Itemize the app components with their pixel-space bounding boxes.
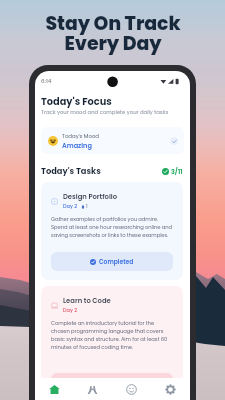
staticText: Today's Mood [62,132,99,140]
button[interactable]: Settings [151,378,190,400]
button[interactable]: Home [35,378,73,400]
staticText: Day 2 [63,307,78,314]
staticText: Gather examples of portfolios you admire… [51,215,174,239]
staticText: Complete an introductory tutorial for th… [51,319,174,351]
button[interactable]: Mood [112,378,151,400]
staticText: Day 2 [63,203,78,210]
staticText: 3/11 [171,167,183,176]
button[interactable]: Today's Mood [41,127,184,154]
staticText: Today's Tasks [41,165,101,177]
staticText: Amazing [62,141,92,150]
staticText: Completed [99,379,134,387]
staticText: 6:14 [41,77,52,85]
button[interactable]: Completed [51,373,173,392]
staticText: Stay On Track Every Day [45,10,181,56]
button[interactable]: Completed [51,252,173,271]
staticText: Today's Focus [41,95,112,109]
staticText: Learn to Code [63,296,111,306]
staticText: Completed [99,258,134,266]
button[interactable]: Statistics [73,378,112,400]
staticText: 1 [86,203,88,210]
button[interactable]: Mood logged [170,137,178,145]
staticText: Design Portfolio [63,192,118,202]
staticText: Track your mood and complete your daily … [41,108,169,115]
button[interactable]: Design Portfolio [41,182,183,280]
button[interactable]: Learn to Code [41,286,183,400]
